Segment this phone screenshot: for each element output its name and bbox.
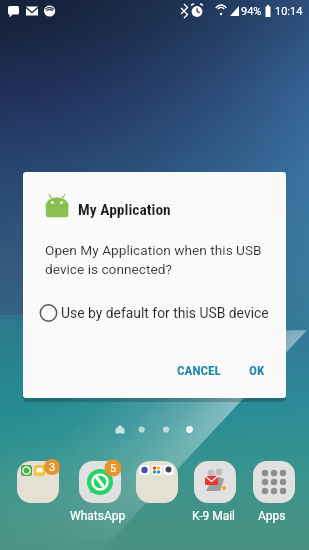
staticText: CANCEL	[177, 363, 221, 378]
staticText: 10:14	[275, 5, 303, 18]
button[interactable]: OK	[238, 354, 275, 386]
staticText: K-9 Mail	[192, 509, 236, 523]
button[interactable]: Messaging folder	[17, 461, 59, 503]
staticText: 94%	[241, 5, 262, 18]
staticText: 5	[110, 462, 117, 473]
staticText: 3	[49, 461, 56, 472]
button[interactable]: CANCEL	[167, 354, 231, 386]
button[interactable]: Apps	[253, 461, 295, 503]
button[interactable]: K-9 Mail	[194, 461, 236, 503]
button[interactable]: Photos folder	[136, 461, 178, 503]
staticText: Open My Application when this USB device…	[45, 242, 270, 277]
staticText: My Application	[78, 201, 171, 219]
staticText: OK	[249, 363, 265, 378]
button[interactable]: Use by default for this USB device	[35, 300, 286, 326]
staticText: WhatsApp	[70, 509, 126, 523]
staticText: Use by default for this USB device	[61, 305, 269, 321]
button[interactable]: WhatsApp	[79, 461, 121, 503]
staticText: Apps	[258, 509, 286, 523]
